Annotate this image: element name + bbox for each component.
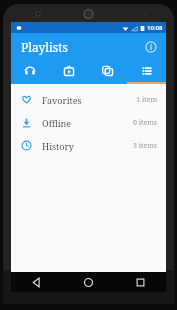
button[interactable]: Offline bbox=[11, 111, 166, 134]
staticText: Playlists bbox=[21, 39, 68, 55]
button[interactable]: Home bbox=[62, 272, 114, 292]
button[interactable]: Music bbox=[11, 60, 49, 82]
button[interactable]: Favorites bbox=[11, 88, 166, 111]
button[interactable]: Back bbox=[11, 272, 62, 292]
staticText: 3 items bbox=[133, 141, 157, 151]
button[interactable]: History bbox=[11, 134, 166, 157]
button[interactable]: Info bbox=[141, 37, 161, 57]
button[interactable]: Library bbox=[88, 60, 127, 82]
staticText: 10:08 bbox=[147, 24, 163, 32]
staticText: 1 item bbox=[136, 95, 157, 105]
button[interactable]: Recents bbox=[114, 272, 166, 292]
button[interactable]: Playlists bbox=[127, 60, 166, 82]
staticText: Favorites bbox=[42, 94, 82, 106]
staticText: Offline bbox=[42, 117, 72, 129]
button[interactable]: Videos bbox=[49, 60, 88, 82]
staticText: History bbox=[42, 140, 74, 152]
staticText: 0 items bbox=[133, 118, 157, 128]
